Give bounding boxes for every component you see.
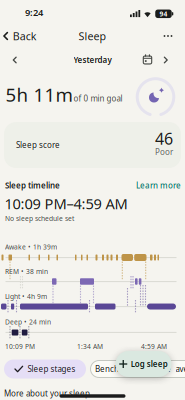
staticText: 4:59 AM	[141, 342, 167, 351]
staticText: Yesterday	[73, 55, 111, 65]
button[interactable]: More options	[160, 29, 176, 43]
staticText: 46	[155, 128, 173, 149]
button[interactable]: Log sleep	[115, 351, 171, 377]
staticText: Light • 4h 9m	[5, 292, 47, 301]
staticText: 10:09 PM–4:59 AM	[4, 194, 127, 213]
staticText: Deep • 24 min	[5, 318, 51, 326]
button[interactable]: Sleep goal progress	[134, 76, 176, 118]
staticText: REM • 38 min	[5, 267, 48, 276]
staticText: Poor	[155, 147, 173, 157]
staticText: Awake • 1h 39m	[5, 243, 57, 251]
staticText: No sleep schedule set	[5, 214, 74, 223]
staticText: Back	[13, 29, 37, 43]
staticText: Log sleep	[131, 359, 168, 369]
button[interactable]: Choose date	[142, 54, 153, 66]
button[interactable]: Previous day	[10, 56, 18, 64]
button[interactable]: Sleep score	[4, 122, 181, 168]
staticText: Sleep	[78, 29, 106, 43]
staticText: More about your sleep	[4, 388, 90, 399]
staticText: Learn more	[136, 180, 181, 191]
staticText: 1:34 AM	[77, 342, 103, 351]
staticText: 94	[159, 9, 167, 18]
staticText: 5h 11m	[5, 82, 72, 107]
button[interactable]: Learn more	[136, 180, 181, 191]
staticText: of 0 min goal	[73, 93, 122, 104]
staticText: Benchmark: average	[95, 364, 171, 374]
button[interactable]: Back	[2, 29, 37, 43]
staticText: avera	[175, 364, 185, 374]
staticText: Sleep score	[16, 140, 60, 150]
button[interactable]: Yesterday	[73, 55, 111, 65]
button[interactable]: Next day	[162, 56, 170, 64]
staticText: 9:24	[25, 6, 43, 19]
button[interactable]: Benchmark: average	[90, 360, 185, 378]
button[interactable]: Sleep stages	[4, 359, 86, 378]
staticText: 10:09 PM	[5, 342, 35, 351]
staticText: Sleep stages	[27, 364, 75, 374]
staticText: Sleep timeline	[5, 180, 60, 191]
